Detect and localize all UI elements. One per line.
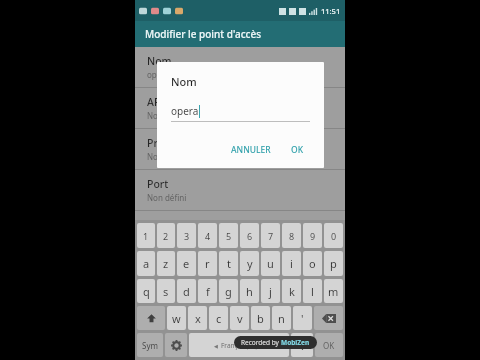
staticText: 9: [310, 230, 316, 242]
staticText: t: [227, 256, 231, 271]
staticText: 3: [184, 230, 190, 242]
staticText: OK: [291, 144, 304, 156]
button[interactable]: y: [240, 251, 259, 276]
staticText: 0: [331, 230, 337, 242]
button[interactable]: l: [303, 279, 322, 303]
button[interactable]: Proxy: [135, 129, 345, 169]
staticText: 4: [205, 230, 211, 242]
staticText: l: [311, 284, 314, 299]
button[interactable]: 4: [198, 223, 217, 248]
button[interactable]: x: [188, 306, 207, 330]
button[interactable]: .: [291, 333, 313, 357]
staticText: m: [328, 284, 339, 299]
button[interactable]: Nom: [135, 47, 345, 87]
button[interactable]: g: [219, 279, 238, 303]
button[interactable]: 3: [177, 223, 196, 248]
staticText: e: [183, 256, 190, 271]
staticText: APN: [147, 95, 169, 109]
button[interactable]: ': [293, 306, 312, 330]
staticText: 6: [247, 230, 253, 242]
staticText: Non défini: [147, 151, 187, 162]
button[interactable]: e: [177, 251, 196, 276]
staticText: i: [290, 256, 293, 271]
button[interactable]: 2: [157, 223, 175, 248]
button[interactable]: j: [261, 279, 280, 303]
button[interactable]: w: [167, 306, 186, 330]
button[interactable]: 7: [261, 223, 280, 248]
button[interactable]: d: [177, 279, 196, 303]
button[interactable]: 9: [303, 223, 322, 248]
button[interactable]: Settings: [165, 333, 187, 357]
button[interactable]: u: [261, 251, 280, 276]
button[interactable]: Shift: [137, 306, 165, 330]
staticText: j: [269, 284, 272, 299]
button[interactable]: o: [303, 251, 322, 276]
staticText: s: [163, 284, 169, 299]
staticText: opera: [147, 69, 169, 80]
button[interactable]: Delete: [314, 306, 343, 330]
button[interactable]: k: [282, 279, 301, 303]
staticText: Non défini: [147, 110, 187, 121]
staticText: v: [237, 311, 243, 326]
button[interactable]: q: [137, 279, 155, 303]
staticText: Français(FR): [221, 341, 258, 350]
staticText: h: [246, 284, 253, 299]
staticText: Sym: [142, 340, 158, 351]
staticText: Port: [147, 177, 169, 191]
button[interactable]: f: [198, 279, 217, 303]
button[interactable]: c: [209, 306, 228, 330]
button[interactable]: t: [219, 251, 238, 276]
staticText: z: [163, 256, 169, 271]
button[interactable]: 1: [137, 223, 155, 248]
button[interactable]: b: [251, 306, 270, 330]
staticText: Modifier le point d'accès: [145, 27, 262, 41]
button[interactable]: Port: [135, 170, 345, 210]
button[interactable]: h: [240, 279, 259, 303]
staticText: opera: [171, 104, 199, 118]
button[interactable]: Sym: [137, 333, 163, 357]
button[interactable]: i: [282, 251, 301, 276]
staticText: u: [267, 256, 274, 271]
staticText: d: [183, 284, 190, 299]
staticText: ▶: [261, 343, 265, 349]
button[interactable]: n: [272, 306, 291, 330]
staticText: n: [278, 311, 285, 326]
staticText: Non défini: [147, 192, 187, 203]
button[interactable]: 5: [219, 223, 238, 248]
staticText: ': [301, 311, 304, 326]
staticText: 2: [163, 230, 169, 242]
staticText: p: [330, 256, 337, 271]
staticText: a: [143, 256, 150, 271]
staticText: w: [172, 311, 181, 326]
staticText: b: [257, 311, 264, 326]
staticText: k: [289, 284, 295, 299]
button[interactable]: 6: [240, 223, 259, 248]
button[interactable]: 8: [282, 223, 301, 248]
button[interactable]: s: [157, 279, 175, 303]
button[interactable]: m: [324, 279, 343, 303]
button[interactable]: p: [324, 251, 343, 276]
staticText: Recorded by: [241, 338, 281, 347]
staticText: c: [216, 311, 222, 326]
button[interactable]: v: [230, 306, 249, 330]
staticText: f: [206, 284, 210, 299]
staticText: Nom: [147, 54, 172, 68]
button[interactable]: ANNULER: [225, 140, 277, 160]
staticText: 11:51: [321, 6, 341, 16]
staticText: 5: [226, 230, 232, 242]
button[interactable]: ◀: [189, 333, 289, 357]
staticText: 8: [289, 230, 295, 242]
button[interactable]: APN: [135, 88, 345, 128]
staticText: y: [247, 256, 253, 271]
button[interactable]: r: [198, 251, 217, 276]
staticText: g: [225, 284, 232, 299]
button[interactable]: OK: [285, 140, 310, 160]
staticText: OK: [323, 340, 335, 351]
button[interactable]: OK: [315, 333, 343, 357]
button[interactable]: Modifier le point d'accès: [135, 21, 345, 47]
staticText: r: [205, 256, 210, 271]
button[interactable]: z: [157, 251, 175, 276]
staticText: x: [195, 311, 201, 326]
button[interactable]: 0: [324, 223, 343, 248]
button[interactable]: a: [137, 251, 155, 276]
